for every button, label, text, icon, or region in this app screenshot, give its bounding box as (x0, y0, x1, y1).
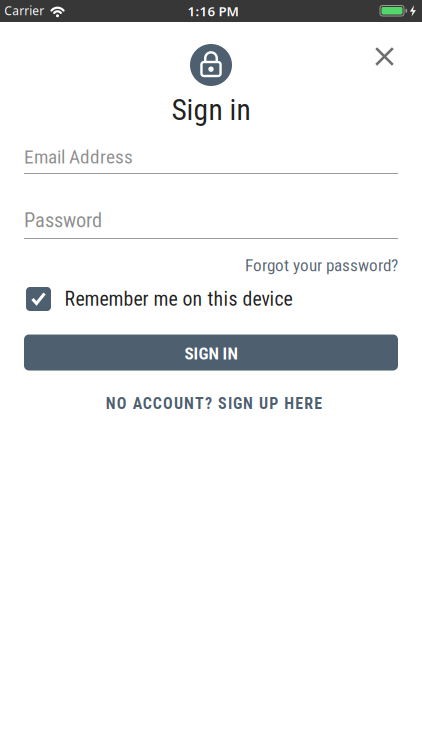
button[interactable]: SIGN IN (24, 334, 398, 370)
staticText: Carrier (4, 3, 44, 19)
button[interactable]: Remember me on this device (26, 287, 398, 311)
staticText: Forgot your password? (245, 255, 398, 275)
staticText: Email Address (24, 146, 133, 168)
staticText: Password (24, 208, 102, 232)
staticText: Sign in (171, 92, 250, 127)
staticText: SIGN IN (184, 344, 237, 364)
button[interactable]: Forgot your password? (24, 255, 398, 275)
staticText: Remember me on this device (64, 287, 292, 311)
button[interactable]: NO ACCOUNT? SIGN UP HERE (4, 394, 422, 413)
staticText: NO ACCOUNT? SIGN UP HERE (106, 394, 322, 413)
button[interactable] (367, 39, 402, 74)
staticText: 1:16 PM (187, 2, 238, 20)
